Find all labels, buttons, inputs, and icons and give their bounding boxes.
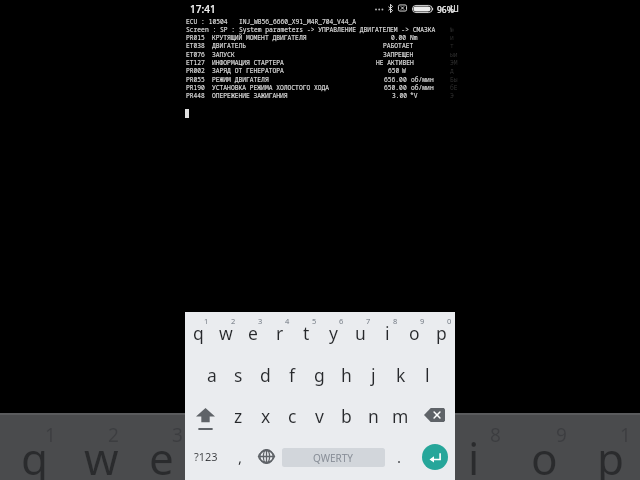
staticText: PR190 <box>186 83 205 92</box>
staticText: ОПЕРЕЖЕНИЕ ЗАЖИГАНИЯ <box>212 91 288 100</box>
staticText: h <box>341 363 352 387</box>
staticText: 17:41 <box>190 2 216 16</box>
button[interactable]: 8 <box>374 312 401 354</box>
staticText: 2 <box>108 422 119 448</box>
staticText: r <box>276 321 284 345</box>
staticText: e <box>149 428 174 480</box>
button[interactable]: l <box>414 354 441 396</box>
button[interactable]: 0 <box>428 312 455 354</box>
button[interactable]: m <box>387 396 414 438</box>
button[interactable]: g <box>306 354 333 396</box>
staticText: v <box>315 404 324 428</box>
staticText: 1 <box>204 316 209 326</box>
staticText: e <box>248 321 258 345</box>
button[interactable]: 1 <box>185 312 212 354</box>
button[interactable]: Enter <box>413 438 455 480</box>
staticText: W <box>402 66 406 75</box>
staticText: 96% <box>437 4 454 16</box>
staticText: p <box>436 321 447 345</box>
button[interactable]: 6 <box>320 312 347 354</box>
button[interactable]: h <box>333 354 360 396</box>
staticText: 7 <box>366 316 371 326</box>
staticText: c <box>288 404 297 428</box>
button[interactable]: k <box>387 354 414 396</box>
staticText: ET076 <box>186 50 205 59</box>
staticText: x <box>261 404 271 428</box>
staticText: d <box>260 363 271 387</box>
staticText: PR448 <box>186 91 205 100</box>
staticText: n <box>368 404 379 428</box>
staticText: 656.00 <box>384 75 407 84</box>
button[interactable]: f <box>279 354 306 396</box>
staticText: z <box>234 404 243 428</box>
staticText: w <box>219 321 233 345</box>
button[interactable]: Backspace <box>414 396 455 438</box>
staticText: j <box>371 363 376 387</box>
button[interactable]: 9 <box>401 312 428 354</box>
staticText: q <box>193 321 204 345</box>
staticText: f <box>289 363 296 387</box>
staticText: ыи <box>450 50 458 59</box>
button[interactable]: x <box>252 396 279 438</box>
button[interactable]: b <box>333 396 360 438</box>
staticText: m <box>392 404 409 428</box>
staticText: 9 <box>556 422 567 448</box>
staticText: ?123 <box>194 449 218 464</box>
staticText: PR055 <box>186 75 205 84</box>
staticText: Screen : SP : System parameters -> УПРАВ… <box>186 25 436 34</box>
staticText: y <box>329 321 338 345</box>
button[interactable]: 4 <box>266 312 293 354</box>
staticText: Бы <box>450 75 458 84</box>
button[interactable]: Change keyboard language <box>254 438 281 480</box>
button[interactable]: a <box>198 354 225 396</box>
staticText: ET127 <box>186 58 205 67</box>
staticText: НЕ АКТИВЕН <box>376 58 414 67</box>
staticText: QWERTY <box>313 451 354 465</box>
staticText: 4 <box>285 316 290 326</box>
button[interactable]: 7 <box>347 312 374 354</box>
button[interactable]: Shift <box>185 396 225 438</box>
button[interactable]: c <box>279 396 306 438</box>
staticText: РАБОТАЕТ <box>383 41 414 50</box>
staticText: b <box>341 404 352 428</box>
staticText: q <box>21 428 49 480</box>
button[interactable]: 5 <box>293 312 320 354</box>
staticText: ДВИГАТЕЛЬ <box>212 41 247 50</box>
staticText: 0 <box>447 316 452 326</box>
staticText: РЕЖИМ ДВИГАТЕЛЯ <box>212 75 269 84</box>
staticText: p <box>597 428 625 480</box>
staticText: PR002 <box>186 66 205 75</box>
staticText: u <box>355 321 366 345</box>
staticText: PR015 <box>186 33 205 42</box>
staticText: s <box>234 363 243 387</box>
staticText: КРУТЯЩИЙ МОМЕНТ ДВИГАТЕЛЯ <box>212 33 307 42</box>
staticText: g <box>314 363 325 387</box>
staticText: ЗАПУСК <box>212 50 235 59</box>
staticText: 3 <box>172 422 183 448</box>
staticText: k <box>396 363 406 387</box>
staticText: 6 <box>339 316 344 326</box>
button[interactable]: 3 <box>239 312 266 354</box>
staticText: Э <box>450 91 454 100</box>
staticText: 650.00 <box>384 83 407 92</box>
button[interactable]: . <box>386 438 413 480</box>
staticText: ЭМ <box>450 58 458 67</box>
staticText: бЕ <box>450 83 458 92</box>
button[interactable]: v <box>306 396 333 438</box>
button[interactable]: s <box>225 354 252 396</box>
button[interactable]: QWERTY <box>282 448 385 467</box>
staticText: 3 <box>258 316 263 326</box>
button[interactable]: ?123 <box>185 438 227 480</box>
staticText: t <box>303 321 310 345</box>
staticText: o <box>409 321 420 345</box>
button[interactable]: , <box>227 438 254 480</box>
staticText: и <box>450 33 454 42</box>
staticText: 5 <box>312 316 317 326</box>
button[interactable]: d <box>252 354 279 396</box>
button[interactable]: j <box>360 354 387 396</box>
button[interactable]: 2 <box>212 312 239 354</box>
button[interactable]: z <box>225 396 252 438</box>
staticText: ET038 <box>186 41 205 50</box>
staticText: Nm <box>410 33 418 42</box>
button[interactable]: n <box>360 396 387 438</box>
